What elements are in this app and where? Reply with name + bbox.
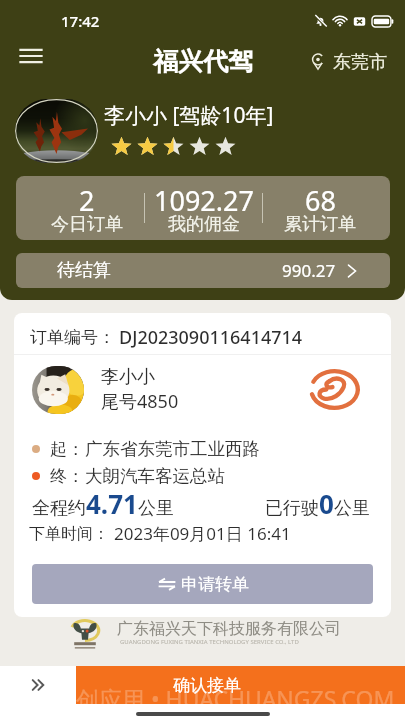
staticText: 下单时间： xyxy=(29,524,109,544)
staticText: 990.27 xyxy=(282,259,336,282)
staticText: 公里 xyxy=(138,497,174,520)
staticText: 终： xyxy=(50,466,84,487)
staticText: 李小小 [驾龄10年] xyxy=(104,101,274,130)
staticText: 广东福兴天下科技服务有限公司 xyxy=(117,619,341,639)
staticText: 申请转单 xyxy=(181,574,249,595)
staticText: 今日订单 xyxy=(51,213,123,234)
button[interactable]: Expand more actions xyxy=(0,666,76,704)
staticText: 2023年09月01日 16:41 xyxy=(114,522,291,545)
staticText: 4.71 xyxy=(86,486,138,521)
staticText: 累计订单 xyxy=(284,213,356,234)
button[interactable]: 东莞市 xyxy=(309,51,405,74)
staticText: 华创应用 • HUACHUANGZS.COM xyxy=(53,683,395,714)
staticText: 李小小 xyxy=(101,366,155,389)
button[interactable]: 2 xyxy=(16,176,390,240)
staticText: 广东省东莞市工业西路 xyxy=(85,438,260,460)
staticText: 东莞市 xyxy=(333,51,387,74)
button[interactable]: Menu xyxy=(9,34,53,78)
staticText: 确认接单 xyxy=(173,675,241,696)
staticText: 已行驶 xyxy=(265,497,319,520)
button[interactable]: 申请转单 xyxy=(32,564,373,604)
button[interactable]: 订单编号： xyxy=(14,313,391,617)
button[interactable]: 待结算 xyxy=(16,253,390,288)
staticText: GUANGDONG FUXING TIANXIA TECHNOLOGY SERV… xyxy=(120,638,299,646)
staticText: 福兴代驾 xyxy=(153,46,253,77)
staticText: 1092.27 xyxy=(154,182,254,219)
staticText: 待结算 xyxy=(57,259,111,282)
staticText: 大朗汽车客运总站 xyxy=(85,465,225,487)
staticText: 尾号4850 xyxy=(101,389,179,414)
staticText: 0 xyxy=(319,486,334,521)
staticText: 订单编号： xyxy=(30,327,115,348)
staticText: 2 xyxy=(79,182,95,219)
staticText: 我的佣金 xyxy=(168,213,240,234)
staticText: 全程约 xyxy=(32,497,86,520)
staticText: DJ2023090116414714 xyxy=(119,325,303,350)
staticText: 公里 xyxy=(334,497,370,520)
staticText: 起： xyxy=(50,439,84,460)
button[interactable]: 确认接单 xyxy=(76,666,405,704)
staticText: 68 xyxy=(305,182,336,219)
staticText: 17:42 xyxy=(61,11,100,31)
